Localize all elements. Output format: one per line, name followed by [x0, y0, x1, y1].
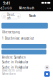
staticText: Übersetzung [2, 30, 20, 34]
staticText: Nach [29, 14, 36, 18]
staticText: Erweitern und Schreiben [2, 69, 22, 76]
staticText: Suche in Vokabular [2, 66, 28, 69]
staticText: 9:41 [3, 0, 10, 5]
staticText: Suche in Vokabular [2, 60, 28, 64]
staticText: Deutsch [7, 13, 15, 20]
button[interactable]: More [44, 7, 51, 10]
staticText: Wörterbuch [18, 6, 34, 10]
button[interactable]: Stop [44, 71, 50, 77]
staticText: 1 Ergebnisse angezeigt [2, 37, 34, 40]
staticText: Andere Sprachen [2, 56, 26, 59]
button[interactable]: Deutsch [2, 13, 21, 19]
button[interactable]: Zurück [1, 6, 14, 10]
button[interactable]: Add [44, 65, 49, 70]
staticText: Zurück [2, 6, 11, 10]
